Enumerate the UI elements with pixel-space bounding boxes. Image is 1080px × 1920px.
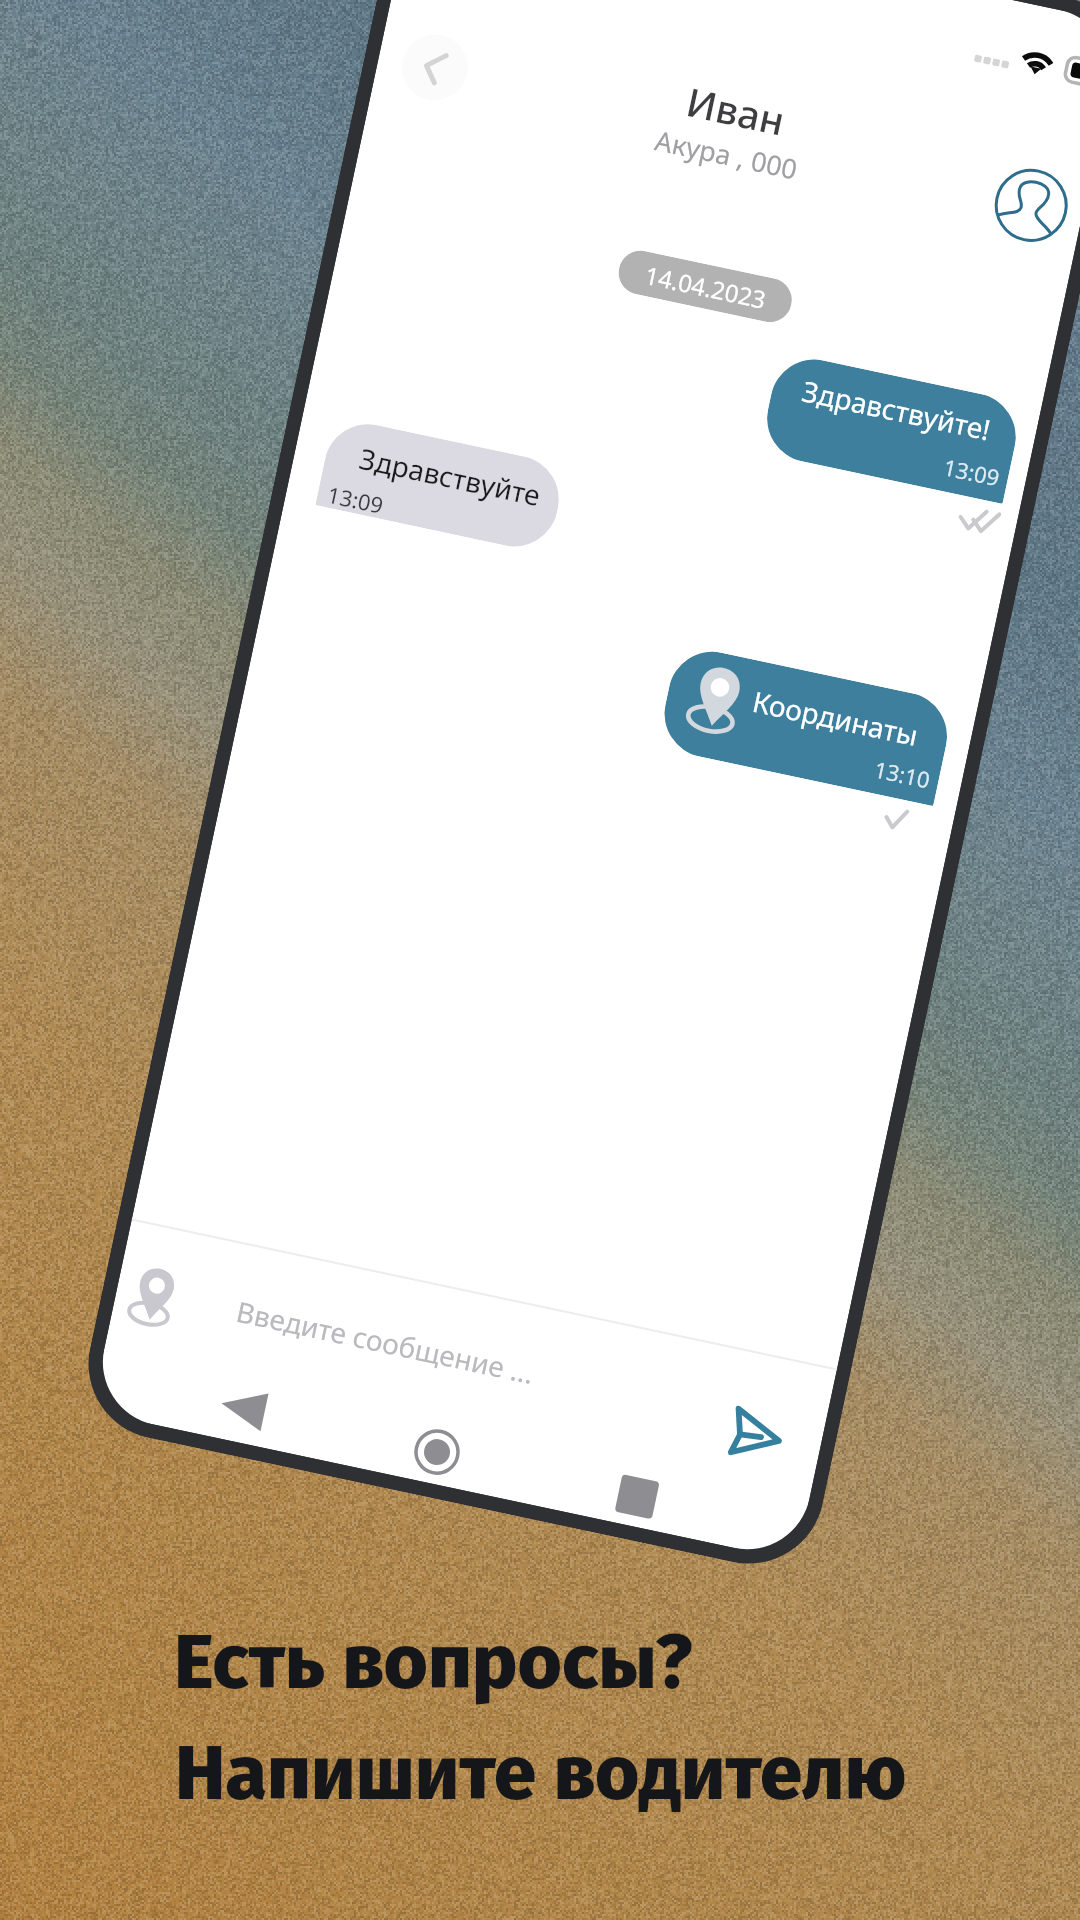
staticText: Координаты	[749, 682, 922, 754]
staticText: Акура , 000	[652, 121, 801, 188]
button[interactable]: Profile	[987, 161, 1075, 249]
button[interactable]: Back	[396, 28, 474, 107]
staticText: 13:09	[325, 479, 387, 519]
staticText: Здравствуйте!	[799, 371, 995, 448]
staticText: Иван	[682, 74, 790, 147]
staticText: Есть вопросы?	[174, 1617, 693, 1708]
button[interactable]: Send	[715, 1396, 798, 1475]
button[interactable]: 14.04.2023	[615, 247, 796, 326]
button[interactable]: Здравствуйте	[315, 416, 567, 555]
staticText: 13:10	[872, 753, 934, 795]
staticText: Напишите водителю	[175, 1728, 907, 1819]
staticText: 14.04.2023	[642, 258, 769, 316]
button[interactable]: Attach location	[119, 1257, 185, 1336]
button[interactable]: Координаты	[656, 644, 955, 806]
staticText: Введите сообщение ...	[233, 1292, 537, 1392]
staticText: Здравствуйте	[356, 439, 544, 514]
button[interactable]: Здравствуйте!	[759, 351, 1024, 504]
staticText: 13:09	[941, 451, 1003, 492]
